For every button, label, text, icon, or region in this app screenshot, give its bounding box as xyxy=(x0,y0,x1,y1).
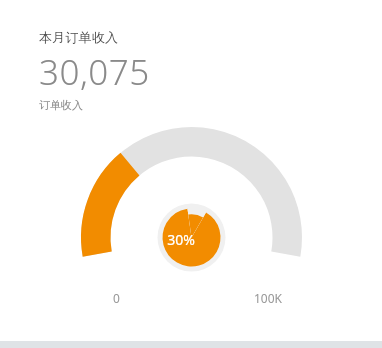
staticText: 0 xyxy=(113,290,120,306)
staticText: 本月订单收入 xyxy=(39,29,119,45)
button[interactable]: Monthly order revenue gauge, 30 percent xyxy=(0,0,382,348)
staticText: 订单收入 xyxy=(39,98,83,112)
staticText: 30,075 xyxy=(39,48,150,96)
staticText: 30% xyxy=(167,230,195,249)
staticText: 100K xyxy=(254,290,283,306)
button[interactable]: 本月订单收入 xyxy=(38,29,151,112)
